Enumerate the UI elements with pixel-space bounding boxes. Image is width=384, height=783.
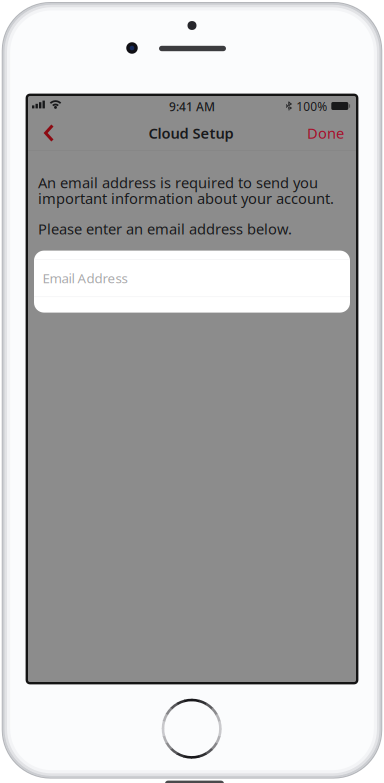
button[interactable]: Done — [304, 117, 347, 149]
staticText: 9:41 AM — [169, 98, 215, 114]
staticText: Done — [307, 123, 344, 143]
staticText: Cloud Setup — [148, 123, 233, 143]
button[interactable]: Back — [35, 117, 63, 149]
staticText: Email Address — [42, 269, 127, 287]
staticText: Please enter an email address below. — [38, 219, 292, 238]
staticText: An email address is required to send you — [38, 173, 318, 192]
staticText: 100% — [296, 98, 327, 114]
staticText: important information about your account… — [38, 189, 334, 208]
